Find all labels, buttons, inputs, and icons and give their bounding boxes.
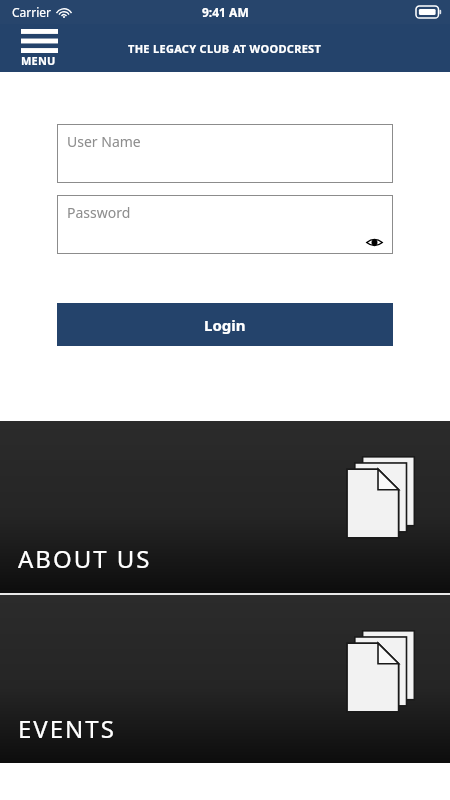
staticText: 9:41 AM [202, 4, 249, 20]
staticText: Login [204, 315, 246, 335]
button[interactable]: User Name [57, 124, 393, 183]
button[interactable]: Login [57, 303, 393, 346]
button[interactable]: Password [57, 195, 393, 254]
button[interactable]: Menu [21, 29, 58, 68]
staticText: ABOUT US [18, 542, 152, 575]
staticText: THE LEGACY CLUB AT WOODCREST [128, 41, 322, 56]
button[interactable]: Show password [366, 236, 383, 249]
staticText: Password [67, 203, 131, 222]
staticText: EVENTS [18, 712, 116, 745]
button[interactable]: ABOUT US [0, 421, 450, 593]
staticText: MENU [21, 53, 56, 68]
staticText: User Name [67, 132, 141, 151]
button[interactable]: EVENTS [0, 595, 450, 763]
staticText: Carrier [12, 4, 52, 20]
